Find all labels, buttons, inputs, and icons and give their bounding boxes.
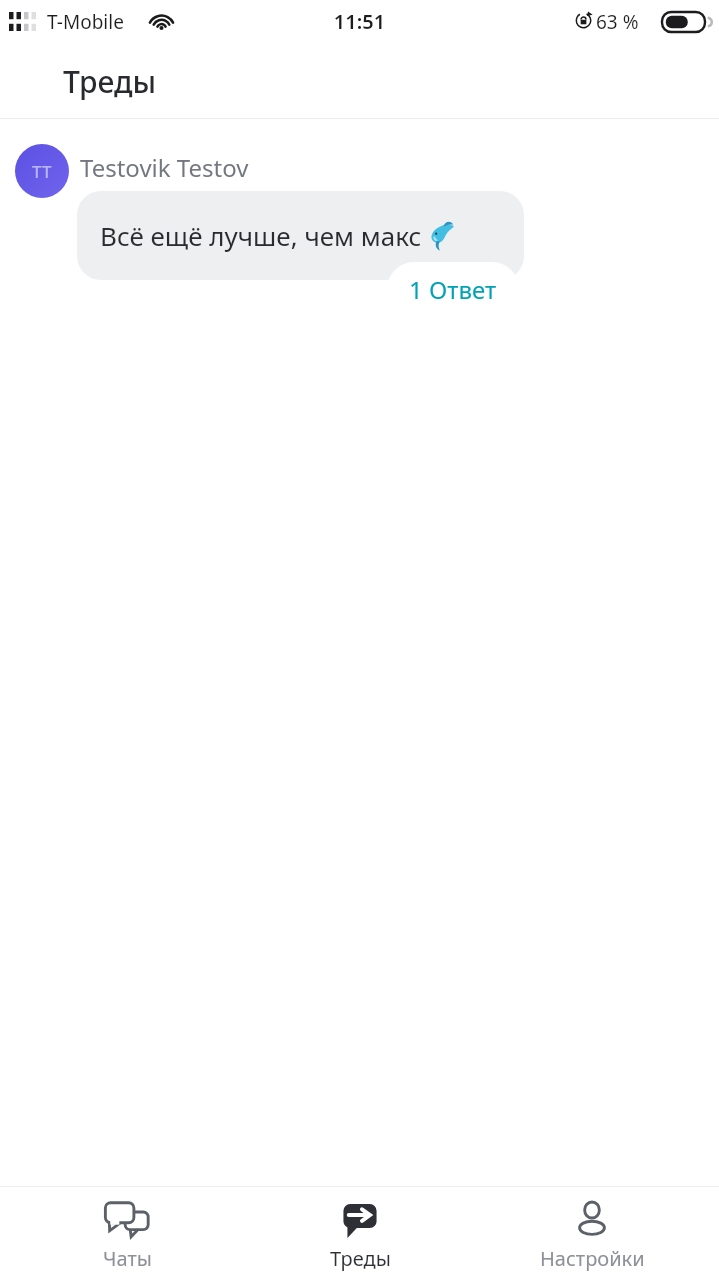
staticText: Testovik Testov: [80, 151, 249, 184]
staticText: 63 %: [596, 9, 639, 35]
staticText: Всё ещё лучше, чем макс: [100, 218, 422, 253]
button[interactable]: TT: [15, 144, 69, 198]
staticText: TT: [32, 160, 52, 183]
staticText: 1 Ответ: [409, 273, 497, 306]
other: Чаты: [104, 1200, 150, 1240]
staticText: 11:51: [0, 8, 719, 35]
button[interactable]: Чаты: [22, 1187, 232, 1272]
staticText: Треды: [330, 1245, 391, 1272]
staticText: Треды: [63, 61, 157, 102]
button[interactable]: Треды: [255, 1187, 465, 1272]
staticText: T-Mobile: [47, 9, 124, 35]
other: Настройки: [569, 1200, 615, 1240]
button[interactable]: Всё ещё лучше, чем макс: [77, 191, 524, 280]
button[interactable]: 1 Ответ: [387, 262, 519, 317]
staticText: Настройки: [540, 1245, 645, 1272]
staticText: Чаты: [103, 1245, 152, 1272]
other: Треды: [337, 1200, 383, 1240]
button[interactable]: Настройки: [487, 1187, 697, 1272]
